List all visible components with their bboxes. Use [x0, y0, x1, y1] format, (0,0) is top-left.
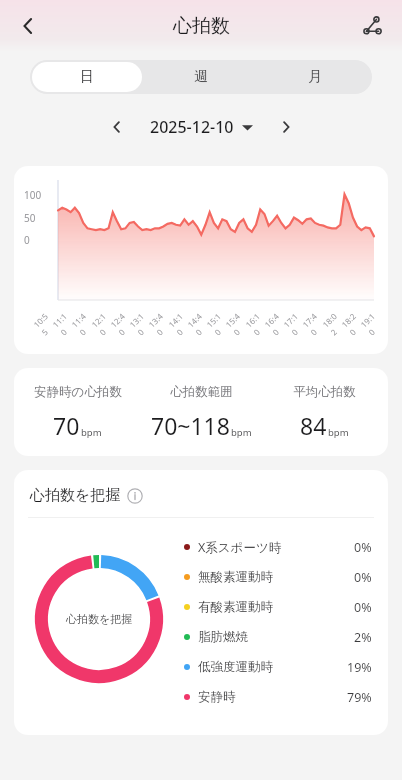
- staticText: 脂肪燃焼: [198, 629, 248, 645]
- staticText: 無酸素運動時: [198, 569, 273, 585]
- button[interactable]: Back: [6, 4, 50, 48]
- staticText: 17:10: [281, 308, 310, 337]
- staticText: 安静時: [198, 689, 236, 705]
- staticText: 12:40: [108, 308, 137, 337]
- button[interactable]: Previous day: [100, 110, 134, 144]
- button[interactable]: 月: [260, 62, 370, 92]
- staticText: 84: [300, 410, 327, 441]
- staticText: 17:40: [300, 308, 329, 337]
- staticText: 11:40: [69, 308, 98, 337]
- staticText: 安静時の心拍数: [34, 384, 122, 400]
- staticText: 70: [53, 410, 80, 441]
- staticText: X系スポーツ時: [198, 539, 282, 556]
- button[interactable]: 有酸素運動時: [184, 592, 372, 622]
- button[interactable]: 日: [32, 62, 142, 92]
- staticText: 週: [194, 68, 208, 86]
- staticText: 心拍数を把握: [30, 486, 121, 505]
- staticText: 平均心拍数: [293, 384, 356, 400]
- button[interactable]: Next day: [269, 110, 303, 144]
- staticText: 50: [24, 211, 36, 225]
- button[interactable]: X系スポーツ時: [184, 532, 372, 562]
- staticText: 12:10: [89, 308, 118, 337]
- staticText: 心拍数を把握: [66, 612, 133, 626]
- staticText: 19:10: [358, 308, 387, 337]
- staticText: bpm: [81, 426, 102, 439]
- staticText: bpm: [231, 426, 252, 439]
- staticText: 10:55: [31, 308, 60, 337]
- staticText: 2%: [354, 629, 372, 646]
- staticText: 18:02: [320, 308, 349, 337]
- staticText: bpm: [328, 426, 349, 439]
- staticText: 79%: [347, 689, 372, 706]
- staticText: 0%: [354, 569, 372, 586]
- staticText: 心拍数範囲: [170, 384, 233, 400]
- staticText: 15:40: [223, 308, 252, 337]
- staticText: 0%: [354, 599, 372, 616]
- button[interactable]: 無酸素運動時: [184, 562, 372, 592]
- staticText: 100: [24, 188, 42, 202]
- staticText: 0: [24, 233, 30, 247]
- button[interactable]: 心拍数を把握: [30, 486, 143, 505]
- staticText: 13:10: [127, 308, 156, 337]
- staticText: 月: [308, 68, 322, 86]
- staticText: 心拍数: [173, 14, 230, 38]
- button[interactable]: 安静時の心拍数: [14, 368, 388, 456]
- button[interactable]: Share: [350, 4, 394, 48]
- button[interactable]: 安静時: [184, 682, 372, 712]
- staticText: 13:40: [146, 308, 175, 337]
- other: Info: [127, 488, 143, 504]
- staticText: 16:10: [243, 308, 272, 337]
- staticText: 16:40: [262, 308, 291, 337]
- button[interactable]: 週: [146, 62, 256, 92]
- staticText: 15:10: [204, 308, 233, 337]
- staticText: 18:20: [339, 308, 368, 337]
- staticText: 14:10: [166, 308, 195, 337]
- button[interactable]: 2025-12-10: [146, 112, 257, 142]
- staticText: 19%: [347, 659, 372, 676]
- staticText: 70~118: [151, 410, 230, 441]
- staticText: 11:10: [50, 308, 79, 337]
- staticText: 0%: [354, 539, 372, 556]
- staticText: 14:40: [185, 308, 214, 337]
- button[interactable]: 低強度運動時: [184, 652, 372, 682]
- staticText: 日: [80, 68, 94, 86]
- staticText: 低強度運動時: [198, 659, 273, 675]
- staticText: 有酸素運動時: [198, 599, 273, 615]
- staticText: 2025-12-10: [150, 116, 234, 138]
- button[interactable]: 脂肪燃焼: [184, 622, 372, 652]
